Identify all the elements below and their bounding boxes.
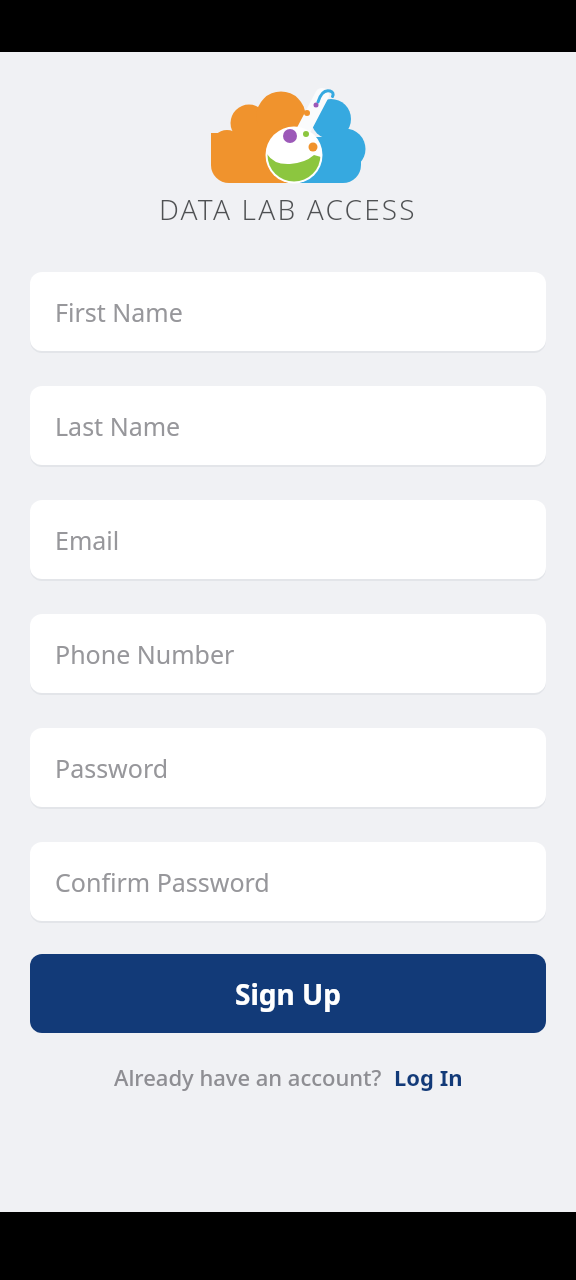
staticText: Last Name <box>55 409 181 443</box>
staticText: First Name <box>55 295 183 329</box>
staticText: Email <box>55 523 120 557</box>
button[interactable]: Last Name <box>30 386 546 465</box>
button[interactable]: Phone Number <box>30 614 546 693</box>
button[interactable]: Sign Up <box>30 954 546 1033</box>
button[interactable]: Password <box>30 728 546 807</box>
button[interactable]: First Name <box>30 272 546 351</box>
staticText: Sign Up <box>235 975 341 1013</box>
staticText: DATA LAB ACCESS <box>159 190 417 228</box>
staticText: Phone Number <box>55 637 235 671</box>
button[interactable]: Log In <box>394 1062 463 1092</box>
staticText: Password <box>55 751 169 785</box>
button[interactable]: Email <box>30 500 546 579</box>
staticText: Already have an account? <box>114 1062 382 1092</box>
button[interactable]: Confirm Password <box>30 842 546 921</box>
staticText: Confirm Password <box>55 865 270 899</box>
